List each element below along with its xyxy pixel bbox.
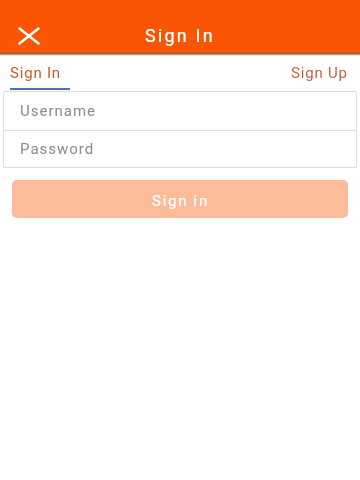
button[interactable]: Sign in bbox=[12, 180, 348, 218]
button[interactable]: Password bbox=[3, 131, 357, 168]
button[interactable]: Close bbox=[11, 18, 47, 54]
staticText: Sign Up bbox=[291, 64, 348, 82]
staticText: Sign In bbox=[145, 25, 215, 46]
button[interactable]: Sign Up bbox=[274, 56, 360, 88]
staticText: Username bbox=[20, 102, 97, 120]
button[interactable]: Username bbox=[3, 91, 357, 130]
staticText: Sign In bbox=[10, 64, 61, 82]
staticText: Sign in bbox=[152, 192, 209, 210]
button[interactable]: Sign In bbox=[0, 56, 86, 88]
staticText: Password bbox=[20, 140, 95, 158]
